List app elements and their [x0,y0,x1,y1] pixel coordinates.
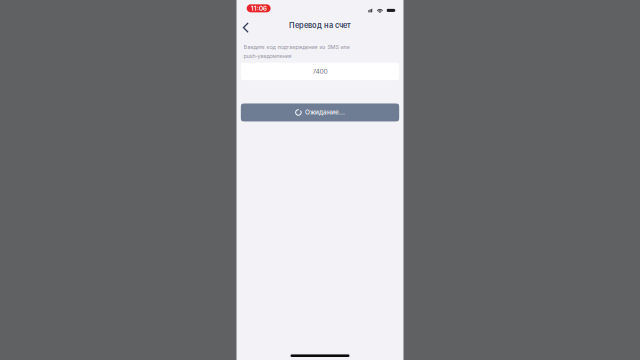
button[interactable]: Back [236,19,255,36]
staticText: 7400 [312,67,327,75]
staticText: 11:06 [251,4,267,12]
staticText: push-уведомления [243,53,291,59]
button[interactable]: Ожидание... [241,103,399,121]
staticText: Перевод на счет [289,21,351,30]
staticText: Введите код подтверждения из SMS или [243,44,349,50]
staticText: Ожидание... [305,108,345,116]
